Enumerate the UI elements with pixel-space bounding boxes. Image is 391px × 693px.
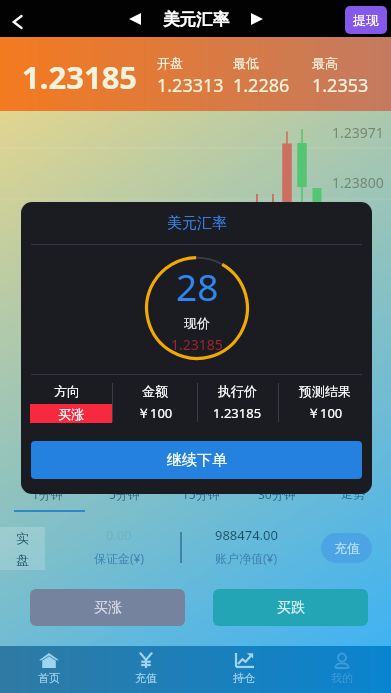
- button[interactable]: 充值: [97, 646, 195, 693]
- staticText: 持仓: [233, 671, 255, 685]
- button[interactable]: 充值: [321, 533, 372, 563]
- staticText: 充值: [135, 671, 157, 685]
- staticText: 继续下单: [167, 451, 227, 470]
- staticText: 美元汇率: [163, 9, 229, 30]
- staticText: 988474.00: [215, 526, 278, 544]
- staticText: 充值: [334, 540, 360, 556]
- staticText: 账户净值(¥): [215, 550, 278, 566]
- staticText: 最高: [312, 55, 338, 71]
- staticText: 28: [176, 261, 219, 311]
- staticText: 保证金(¥): [94, 550, 145, 566]
- staticText: ￥100: [137, 404, 173, 422]
- staticText: 实: [16, 530, 29, 546]
- button[interactable]: 1分钟: [9, 488, 86, 515]
- staticText: 美元汇率: [167, 214, 227, 233]
- staticText: 提现: [353, 12, 379, 28]
- staticText: 1.2353: [312, 73, 369, 98]
- button[interactable]: 提现: [345, 6, 387, 34]
- button[interactable]: 15分钟: [163, 488, 239, 515]
- button[interactable]: Next symbol: [244, 6, 270, 32]
- staticText: 执行价: [218, 383, 257, 399]
- staticText: 5分钟: [109, 486, 140, 502]
- staticText: 1.23313: [157, 73, 224, 98]
- button[interactable]: 首页: [0, 646, 97, 693]
- staticText: 方向: [54, 383, 80, 399]
- staticText: 最低: [233, 55, 259, 71]
- button[interactable]: Back: [2, 7, 32, 37]
- staticText: 1.23185: [213, 404, 262, 422]
- staticText: 1.23971: [332, 123, 384, 142]
- staticText: 预测结果: [299, 383, 351, 399]
- button[interactable]: 30分钟: [239, 488, 315, 515]
- staticText: 买涨: [58, 406, 84, 422]
- staticText: ￥100: [307, 404, 343, 422]
- button[interactable]: 我的: [293, 646, 391, 693]
- staticText: 1.23185: [22, 56, 138, 98]
- staticText: 1.2286: [233, 73, 290, 98]
- button[interactable]: 5分钟: [86, 488, 163, 515]
- button[interactable]: 买涨: [30, 589, 185, 626]
- button[interactable]: 持仓: [195, 646, 293, 693]
- staticText: 开盘: [157, 55, 183, 71]
- staticText: 买跌: [277, 599, 305, 617]
- button[interactable]: Previous symbol: [122, 6, 148, 32]
- staticText: 30分钟: [258, 486, 296, 502]
- staticText: 1分钟: [32, 486, 63, 502]
- staticText: 15分钟: [182, 486, 220, 502]
- staticText: 0.00: [106, 526, 132, 544]
- staticText: 首页: [38, 671, 60, 685]
- button[interactable]: 继续下单: [31, 441, 362, 479]
- staticText: 现价: [184, 315, 210, 331]
- staticText: 金额: [142, 383, 168, 399]
- button[interactable]: 走势: [315, 488, 391, 515]
- staticText: 1.23800: [332, 173, 384, 192]
- staticText: 1.23185: [171, 335, 223, 354]
- button[interactable]: 实: [0, 527, 45, 570]
- button[interactable]: 买跌: [213, 589, 368, 626]
- staticText: 我的: [331, 671, 353, 685]
- staticText: 走势: [341, 486, 365, 501]
- staticText: 买涨: [94, 599, 122, 617]
- staticText: 盘: [16, 552, 29, 568]
